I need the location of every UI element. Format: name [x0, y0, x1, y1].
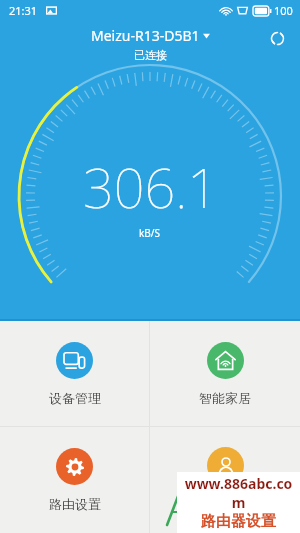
button[interactable]: Meizu-R13-D5B1 [91, 26, 210, 62]
staticText: 已连接 [134, 48, 167, 62]
staticText: 路由设置 [49, 496, 101, 512]
staticText: kB/S [139, 226, 161, 240]
staticText: 智能家居 [199, 390, 251, 406]
staticText: 306.1 [83, 150, 218, 224]
staticText: www.886abc.com [179, 474, 298, 512]
button[interactable]: 智能家居 [150, 321, 300, 426]
button[interactable]: 路由设置 [0, 427, 149, 533]
button[interactable]: 设备管理 [0, 321, 149, 426]
staticText: Meizu-R13-D5B1 [91, 26, 200, 45]
staticText: 100 [274, 3, 293, 18]
staticText: 路由器设置 [201, 512, 276, 531]
button[interactable]: Refresh [263, 24, 291, 52]
staticText: 21:31 [9, 3, 38, 18]
staticText: 设备管理 [49, 390, 101, 406]
button[interactable]: User account [150, 427, 300, 533]
